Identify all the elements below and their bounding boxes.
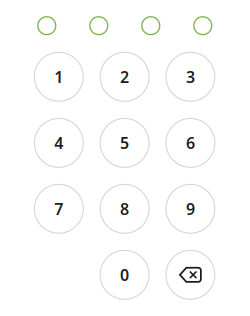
button[interactable]: 4 (34, 118, 83, 167)
staticText: 2 (120, 66, 129, 87)
staticText: 6 (186, 132, 195, 153)
button[interactable]: 5 (100, 118, 149, 167)
button[interactable]: 0 (100, 250, 149, 299)
staticText: 9 (186, 198, 195, 219)
button[interactable]: 1 (34, 52, 83, 101)
staticText: 4 (54, 132, 63, 153)
staticText: 0 (120, 264, 129, 285)
staticText: 7 (54, 198, 63, 219)
button[interactable]: 7 (34, 184, 83, 233)
staticText: 3 (186, 66, 195, 87)
button[interactable]: Delete (166, 250, 215, 299)
button[interactable]: 6 (166, 118, 215, 167)
button[interactable]: 3 (166, 52, 215, 101)
staticText: 1 (54, 66, 63, 87)
button[interactable]: 2 (100, 52, 149, 101)
button[interactable]: 8 (100, 184, 149, 233)
button[interactable]: 9 (166, 184, 215, 233)
staticText: 8 (120, 198, 129, 219)
staticText: 5 (120, 132, 129, 153)
